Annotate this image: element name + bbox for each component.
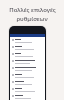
button[interactable] xyxy=(10,59,45,66)
button[interactable] xyxy=(10,52,45,59)
button[interactable] xyxy=(10,45,45,52)
button[interactable] xyxy=(10,66,45,73)
button[interactable] xyxy=(10,38,45,45)
button[interactable] xyxy=(10,73,45,80)
button[interactable] xyxy=(10,80,45,87)
button[interactable] xyxy=(10,87,45,94)
staticText: Πολλές επιλογές xyxy=(9,6,56,14)
staticText: ρυθμίσεων xyxy=(16,15,48,23)
button[interactable] xyxy=(10,94,45,100)
